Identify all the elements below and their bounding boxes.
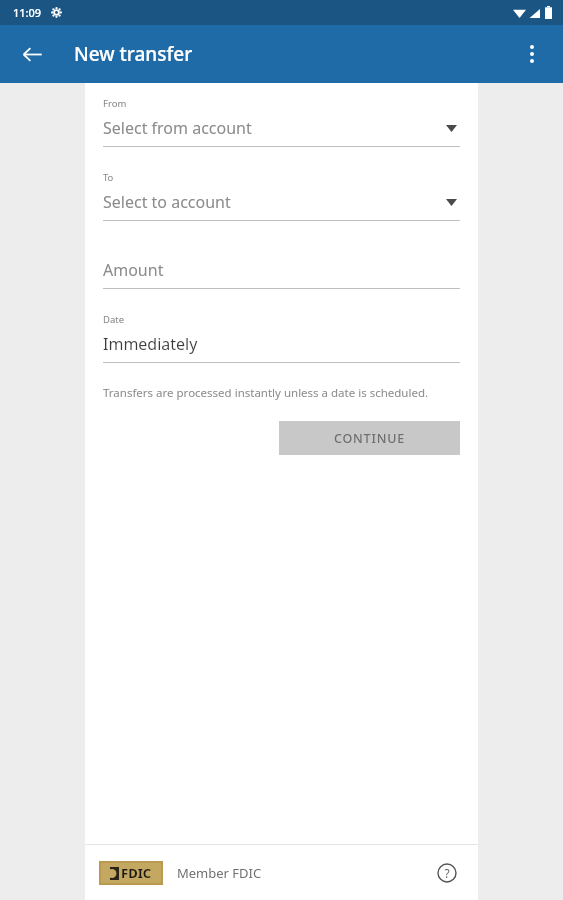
staticText: From [103, 97, 127, 110]
staticText: 11:09 [13, 5, 42, 20]
button[interactable]: Help [430, 856, 464, 890]
staticText: CONTINUE [334, 430, 405, 447]
staticText: Amount [103, 259, 460, 281]
button[interactable]: Amount [103, 259, 460, 289]
button[interactable]: Select to account [103, 191, 460, 221]
staticText: To [103, 171, 114, 184]
staticText: FDIC [121, 864, 152, 882]
staticText: Transfers are processed instantly unless… [103, 385, 429, 401]
staticText: Select to account [103, 191, 449, 213]
button[interactable]: CONTINUE [279, 421, 460, 455]
staticText: Select from account [103, 117, 449, 139]
staticText: ? [444, 865, 450, 881]
staticText: Date [103, 313, 125, 326]
button[interactable]: Back [8, 30, 56, 78]
button[interactable]: Immediately [103, 333, 460, 363]
button[interactable]: Select from account [103, 117, 460, 147]
button[interactable]: More options [508, 30, 556, 78]
staticText: Member FDIC [177, 864, 430, 882]
staticText: Immediately [103, 333, 460, 355]
staticText: New transfer [74, 41, 193, 67]
